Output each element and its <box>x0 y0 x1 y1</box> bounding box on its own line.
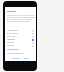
staticText: Help and feedback <box>7 52 24 55</box>
staticText: Sounds <box>7 41 32 44</box>
staticText: Notifications <box>7 29 32 32</box>
button[interactable]: Help and feedback <box>7 52 24 55</box>
button[interactable]: Sounds <box>7 41 34 44</box>
button[interactable]: Notifications <box>7 29 34 32</box>
button[interactable]: Auto sync <box>7 35 34 38</box>
staticText: Choose how your account data is <box>7 14 35 16</box>
staticText: Dark theme <box>7 32 32 35</box>
button[interactable]: Location <box>7 38 34 41</box>
staticText: Location <box>7 38 32 41</box>
staticText: and browsers you use daily. <box>7 20 31 22</box>
staticText: all of your signed in devices <box>9 18 33 20</box>
staticText: shared and synchronised between <box>7 16 36 18</box>
staticText: SAVE <box>24 57 29 60</box>
button[interactable]: CANCEL <box>12 57 20 60</box>
button[interactable]: Settings <box>7 10 16 13</box>
button[interactable]: Dark theme <box>7 32 34 35</box>
staticText: CANCEL <box>12 57 20 60</box>
button[interactable]: Backups <box>7 44 34 47</box>
staticText: More options <box>7 48 20 51</box>
staticText: Backups <box>7 44 32 47</box>
staticText: Settings <box>7 10 16 13</box>
staticText: Auto sync <box>7 35 32 38</box>
button[interactable]: SAVE <box>24 57 29 60</box>
button[interactable]: More options <box>7 48 20 51</box>
